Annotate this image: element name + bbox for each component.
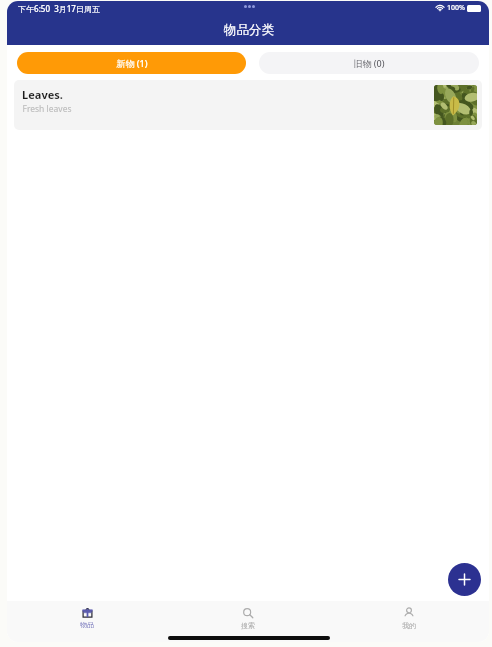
button[interactable]: 我的	[328, 601, 489, 630]
button[interactable]: Leaves.	[14, 80, 482, 130]
staticText: 我的	[402, 621, 416, 630]
button[interactable]: Add item	[448, 563, 481, 596]
staticText: 搜索	[241, 621, 255, 630]
button[interactable]: 新物 (1)	[17, 52, 246, 74]
button[interactable]: 搜索	[167, 601, 328, 630]
staticText: 100%	[447, 3, 465, 13]
staticText: Leaves.	[22, 87, 63, 102]
staticText: 新物 (1)	[116, 57, 148, 69]
staticText: Fresh leaves	[22, 103, 72, 115]
staticText: 下午6:50 3月17日周五	[18, 3, 100, 14]
staticText: 旧物 (0)	[353, 57, 385, 69]
staticText: 物品分类	[224, 22, 274, 38]
button[interactable]: 物品	[7, 601, 167, 629]
button[interactable]: 旧物 (0)	[259, 52, 479, 74]
staticText: 物品	[80, 620, 94, 629]
